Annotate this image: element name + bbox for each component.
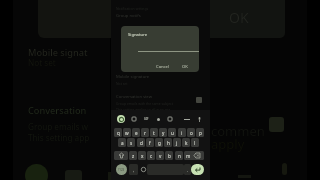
button[interactable]: m [184,151,192,160]
button[interactable]: Clipboard [166,115,174,123]
button[interactable]: z [129,151,137,160]
button[interactable]: Minimize keyboard [183,115,191,123]
button[interactable]: Backspace [190,151,204,160]
staticText: k [185,140,188,146]
button[interactable]: Stickers [130,115,138,123]
button[interactable]: p [196,128,204,137]
staticText: v [159,153,162,159]
button[interactable]: t [150,128,158,137]
staticText: Conversation [28,104,87,117]
staticText: r [144,130,146,136]
staticText: w [125,130,129,136]
staticText: b [168,153,171,159]
staticText: s [130,140,133,146]
staticText: . [187,167,189,173]
staticText: This setting applies to all accounts [116,107,171,112]
button[interactable]: OK [181,64,189,70]
button[interactable]: x [138,151,146,160]
staticText: h [167,140,170,146]
staticText: Mobile signat [28,46,88,59]
button[interactable]: q [114,128,122,137]
button[interactable]: y [159,128,167,137]
button[interactable]: w [123,128,131,137]
button[interactable]: Shift [114,151,128,160]
button[interactable]: o [187,128,195,137]
button[interactable]: a [118,138,126,147]
button[interactable]: e [132,128,140,137]
button[interactable]: j [173,138,181,147]
button[interactable]: l [191,138,199,147]
button[interactable]: i [178,128,186,137]
staticText: OK [229,8,249,27]
button[interactable]: b [165,151,173,160]
staticText: t [153,130,155,136]
button[interactable]: Google assistant [117,115,125,123]
button[interactable]: s [127,138,135,147]
button[interactable]: Emoji kitchen [154,115,162,123]
staticText: x [141,153,144,159]
button[interactable]: v [156,151,164,160]
button[interactable]: r [141,128,149,137]
staticText: f [149,140,151,146]
staticText: e [135,130,138,136]
button[interactable]: f [146,138,154,147]
staticText: GIF [144,117,149,121]
button[interactable]: Emoji [139,164,147,175]
staticText: Not set [28,57,56,68]
button[interactable]: Enter [191,164,204,175]
staticText: l [194,140,196,146]
staticText: c [150,153,153,159]
button[interactable]: k [182,138,190,147]
staticText: a [121,140,124,146]
staticText: ?123 [118,168,125,172]
staticText: , [133,167,135,173]
staticText: m [186,153,191,159]
button[interactable]: Comma [129,164,138,175]
staticText: This setting app [28,132,90,143]
staticText: Conversation view [116,94,152,100]
button[interactable]: c [147,151,155,160]
staticText: o [190,130,193,136]
staticText: Group emails with the same subject [116,101,173,106]
staticText: j [176,140,178,146]
staticText: OK [182,64,188,70]
button[interactable]: h [164,138,172,147]
staticText: Signature [128,32,147,38]
staticText: Group emails w [28,121,88,132]
staticText: q [117,130,120,136]
staticText: Not set [116,81,128,86]
staticText: Cancel [156,64,170,70]
button[interactable]: ?123 [116,164,127,175]
staticText: Mobile signature [116,74,150,80]
staticText: p [199,130,202,136]
button[interactable]: Signature [121,26,199,72]
button[interactable]: g [155,138,163,147]
staticText: commen [211,122,265,140]
staticText: z [132,153,135,159]
staticText: y [162,130,165,136]
button[interactable]: d [137,138,145,147]
staticText: Group notifs [116,13,141,19]
staticText: n [178,153,181,159]
button[interactable]: GIF [142,115,150,123]
button[interactable]: Voice input [195,115,203,123]
button[interactable]: u [168,128,176,137]
staticText: d [140,140,143,146]
staticText: Notification settings [116,6,149,11]
button[interactable]: Period [184,164,191,175]
button[interactable]: Cancel [155,64,171,70]
staticText: g [158,140,161,146]
staticText: u [171,130,174,136]
staticText: i [181,130,183,136]
button[interactable]: n [175,151,183,160]
